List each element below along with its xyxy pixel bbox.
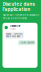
staticText: l'application [2, 7, 30, 12]
staticText: J'ai une question [19, 41, 34, 44]
staticText: Discutez dans [2, 1, 34, 7]
staticText: Conseiller [9, 25, 20, 28]
staticText: Tapez sur l'icône de discussion [2, 14, 38, 17]
staticText: en bas de votre écran. [2, 17, 27, 20]
staticText: Bonjour, comment puis-je vous aider ? [6, 33, 23, 38]
staticText: En ligne [9, 28, 15, 30]
